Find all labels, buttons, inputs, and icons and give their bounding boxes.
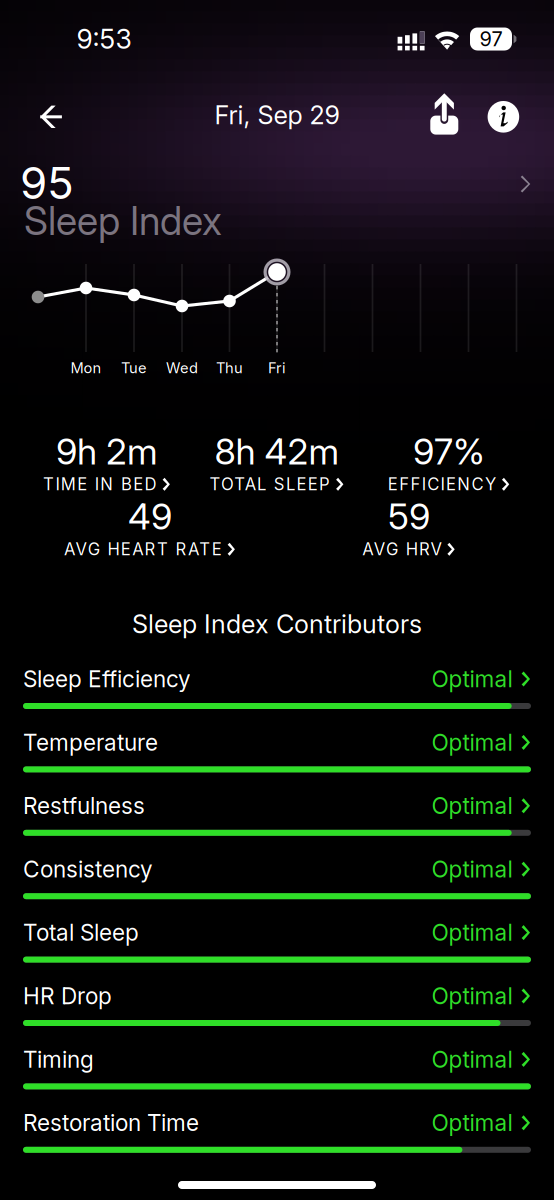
staticText: AVG HRV: [362, 539, 441, 559]
button[interactable]: Back: [0, 0, 554, 1200]
staticText: Consistency: [23, 855, 153, 883]
staticText: Tue: [121, 359, 147, 377]
staticText: 49: [128, 495, 172, 538]
staticText: 9h 2m: [56, 430, 158, 473]
button[interactable]: 8h 42m: [0, 0, 554, 1200]
button[interactable]: 59: [0, 0, 554, 1200]
staticText: Thu: [216, 359, 243, 377]
staticText: Sleep Efficiency: [23, 665, 191, 693]
button[interactable]: Timing: [0, 0, 554, 1200]
staticText: Restoration Time: [23, 1109, 199, 1136]
staticText: Optimal: [432, 729, 513, 756]
staticText: Optimal: [432, 665, 513, 693]
staticText: AVG HEART RATE: [64, 539, 222, 559]
staticText: Temperature: [23, 729, 158, 756]
staticText: 8h 42m: [214, 430, 339, 473]
staticText: Sleep Index: [24, 198, 222, 244]
staticText: Optimal: [432, 855, 513, 883]
staticText: HR Drop: [23, 982, 112, 1010]
staticText: Optimal: [432, 919, 513, 946]
button[interactable]: 9h 2m: [0, 0, 554, 1200]
staticText: TOTAL SLEEP: [210, 474, 330, 494]
staticText: Timing: [23, 1046, 94, 1073]
button[interactable]: Sleep Efficiency: [0, 0, 554, 1200]
staticText: Optimal: [432, 1046, 513, 1073]
staticText: 59: [388, 495, 430, 538]
staticText: 9:53: [76, 23, 131, 55]
staticText: Fri, Sep 29: [214, 100, 339, 130]
staticText: 97: [479, 27, 502, 51]
staticText: Wed: [166, 359, 198, 377]
button[interactable]: 49: [0, 0, 554, 1200]
button[interactable]: Restfulness: [0, 0, 554, 1200]
button[interactable]: Temperature: [0, 0, 554, 1200]
staticText: Fri: [268, 359, 286, 377]
staticText: EFFICIENCY: [388, 474, 496, 494]
button[interactable]: 97%: [0, 0, 554, 1200]
staticText: Optimal: [432, 1109, 513, 1136]
staticText: Total Sleep: [23, 919, 139, 946]
staticText: Optimal: [432, 792, 513, 819]
button[interactable]: Restoration Time: [0, 0, 554, 1200]
staticText: Sleep Index Contributors: [132, 609, 422, 639]
button[interactable]: HR Drop: [0, 0, 554, 1200]
staticText: Optimal: [432, 982, 513, 1010]
button[interactable]: 95: [0, 0, 554, 1200]
staticText: TIME IN BED: [43, 474, 157, 494]
staticText: 97%: [413, 430, 485, 473]
button[interactable]: Total Sleep: [0, 0, 554, 1200]
staticText: 95: [20, 156, 74, 210]
button[interactable]: Info: [0, 0, 554, 1200]
button[interactable]: Consistency: [0, 0, 554, 1200]
staticText: Mon: [70, 359, 101, 377]
button[interactable]: Share: [0, 0, 554, 1200]
staticText: Restfulness: [23, 792, 145, 819]
